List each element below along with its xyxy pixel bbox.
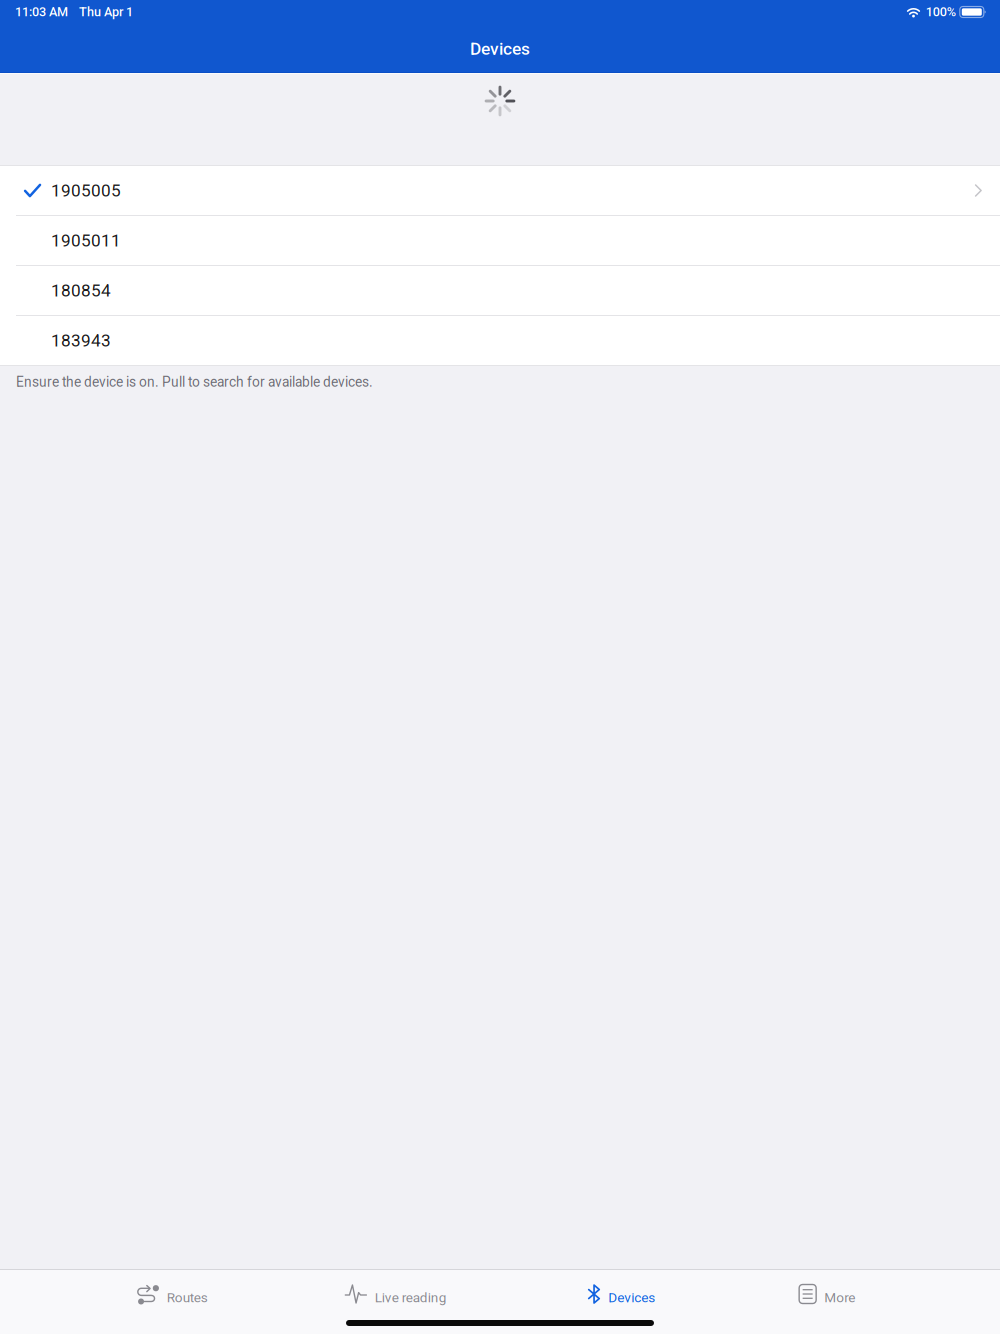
staticText: More xyxy=(824,1289,855,1305)
staticText: 100% xyxy=(926,5,956,19)
button[interactable]: Live reading xyxy=(345,1272,447,1316)
button[interactable]: 183943 xyxy=(0,316,1000,366)
staticText: 180854 xyxy=(51,280,111,301)
staticText: 1905011 xyxy=(51,230,121,251)
staticText: 183943 xyxy=(51,330,111,351)
staticText: Routes xyxy=(167,1289,208,1305)
staticText: Devices xyxy=(608,1289,655,1305)
button[interactable]: 180854 xyxy=(0,266,1000,316)
staticText: Thu Apr 1 xyxy=(79,5,133,19)
button[interactable]: 1905011 xyxy=(0,216,1000,266)
button[interactable]: 1905005 xyxy=(0,166,1000,216)
staticText: Ensure the device is on. Pull to search … xyxy=(16,374,373,390)
staticText: Devices xyxy=(470,39,530,59)
staticText: 11:03 AM xyxy=(15,5,68,19)
button[interactable]: Devices xyxy=(588,1272,655,1316)
button[interactable]: Routes xyxy=(134,1272,208,1316)
button[interactable]: More xyxy=(799,1272,855,1316)
staticText: Live reading xyxy=(375,1289,447,1305)
staticText: 1905005 xyxy=(51,180,121,201)
